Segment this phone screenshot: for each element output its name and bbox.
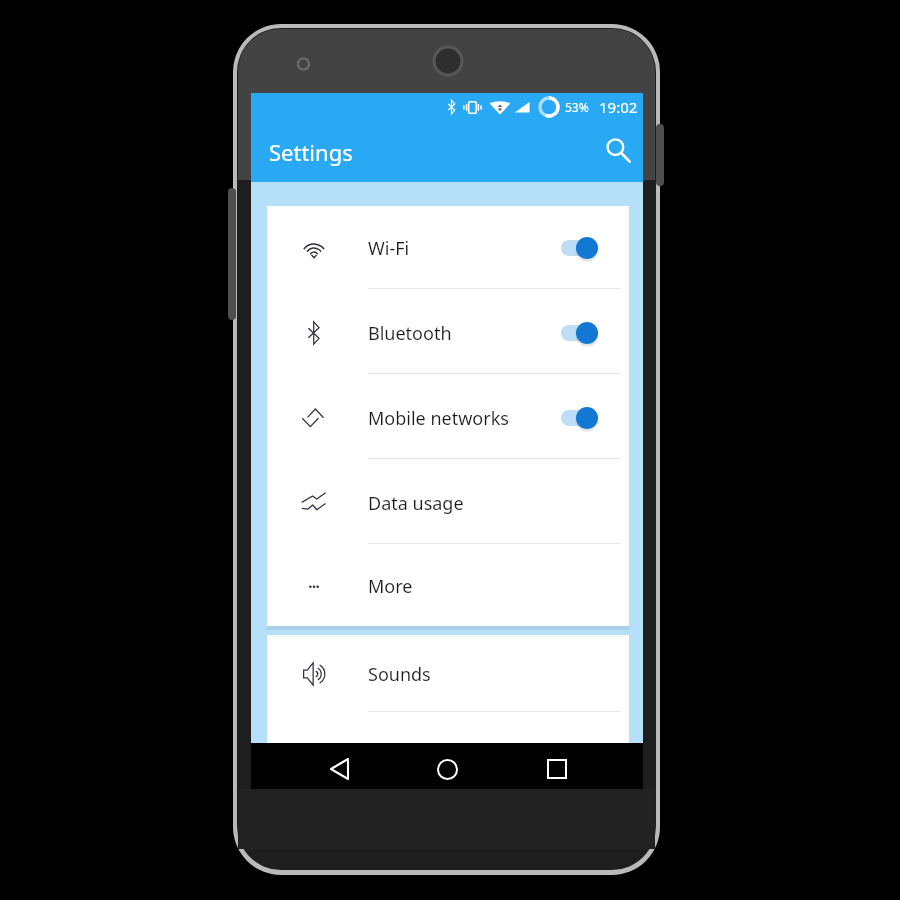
button[interactable]: Mobile networks toggle, on: [561, 406, 598, 430]
button[interactable]: Search: [596, 128, 640, 172]
button[interactable]: Bluetooth toggle, on: [561, 321, 598, 345]
staticText: Wi-Fi: [368, 236, 410, 261]
button[interactable]: Data usage: [267, 461, 629, 545]
button[interactable]: Wi-Fi: [267, 206, 629, 290]
button[interactable]: Back: [316, 746, 362, 792]
staticText: 53%: [565, 99, 589, 115]
button[interactable]: Sounds: [267, 635, 629, 713]
staticText: More: [368, 574, 413, 599]
button[interactable]: Wi-Fi toggle, on: [561, 236, 598, 260]
button[interactable]: Home: [424, 746, 470, 792]
button[interactable]: More: [267, 546, 629, 626]
staticText: Sounds: [368, 662, 431, 687]
staticText: 19:02: [599, 97, 638, 117]
staticText: Bluetooth: [368, 321, 452, 346]
staticText: Settings: [269, 137, 353, 167]
button[interactable]: Recent apps: [534, 746, 580, 792]
button[interactable]: Mobile networks: [267, 376, 629, 460]
staticText: Data usage: [368, 491, 464, 516]
button[interactable]: Bluetooth: [267, 291, 629, 375]
staticText: Mobile networks: [368, 406, 509, 431]
